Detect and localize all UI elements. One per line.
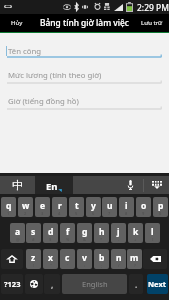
button[interactable]: n — [111, 249, 126, 269]
button[interactable]: Lưu trữ — [135, 14, 169, 32]
button[interactable]: r — [52, 197, 67, 217]
staticText: k — [133, 226, 139, 238]
staticText: & — [83, 237, 86, 242]
button[interactable]: h — [94, 223, 109, 243]
staticText: Lưu trữ — [141, 19, 163, 27]
staticText: 4 — [58, 211, 61, 216]
button[interactable]: Giờ (tiếng đồng hồ) — [0, 92, 169, 114]
staticText: 5 — [75, 211, 78, 216]
button[interactable]: En — [35, 176, 73, 194]
staticText: f — [66, 226, 70, 238]
staticText: b — [99, 252, 105, 264]
button[interactable]: g — [77, 223, 92, 243]
staticText: $ — [49, 237, 52, 242]
staticText: h — [99, 226, 105, 238]
staticText: g — [82, 226, 88, 238]
staticText: q — [6, 200, 12, 212]
staticText: % — [66, 237, 70, 242]
staticText: 8 — [125, 211, 128, 216]
staticText: 中 — [12, 178, 23, 192]
button[interactable]: x — [43, 249, 58, 269]
staticText: j — [117, 226, 120, 238]
button[interactable]: Next — [147, 274, 168, 294]
button[interactable]: , — [44, 274, 60, 294]
staticText: 9 — [142, 211, 145, 216]
staticText: , — [51, 279, 54, 290]
button[interactable]: l — [145, 223, 160, 243]
button[interactable]: c — [60, 249, 75, 269]
button[interactable]: Voice input — [118, 176, 143, 194]
staticText: o — [141, 200, 147, 212]
button[interactable]: ?123 — [1, 274, 23, 294]
staticText: w — [22, 200, 30, 212]
button[interactable]: . — [129, 274, 143, 294]
button[interactable]: b — [94, 249, 109, 269]
staticText: ?123 — [4, 279, 21, 289]
staticText: r — [58, 200, 62, 212]
button[interactable]: j — [111, 223, 126, 243]
button[interactable]: English — [62, 274, 127, 294]
button[interactable]: d — [43, 223, 58, 243]
button[interactable]: Hủy — [0, 14, 34, 32]
button[interactable]: s — [26, 223, 41, 243]
button[interactable]: Change language — [25, 274, 43, 294]
button[interactable]: y — [86, 197, 101, 217]
button[interactable]: q — [1, 197, 16, 217]
staticText: n — [116, 252, 122, 264]
button[interactable]: w — [18, 197, 33, 217]
staticText: Bảng tính giờ làm việc — [40, 17, 129, 28]
button[interactable]: Tên công — [0, 42, 169, 62]
staticText: 3 — [41, 211, 44, 216]
staticText: Mức lương (tính theo giờ) — [8, 70, 102, 81]
staticText: . — [135, 279, 138, 290]
button[interactable]: Shift — [1, 249, 23, 269]
staticText: 6 — [92, 211, 95, 216]
staticText: x — [48, 252, 53, 264]
staticText: i — [125, 200, 128, 212]
button[interactable]: v — [77, 249, 92, 269]
staticText: s — [31, 226, 36, 238]
button[interactable]: z — [26, 249, 41, 269]
staticText: English — [82, 279, 108, 289]
staticText: 2:29 PM — [137, 2, 169, 14]
button[interactable]: o — [136, 197, 151, 217]
button[interactable]: Mức lương (tính theo giờ) — [0, 66, 169, 88]
staticText: e — [40, 200, 46, 212]
staticText: y — [91, 200, 96, 212]
staticText: 2 — [24, 211, 27, 216]
staticText: * — [100, 237, 103, 242]
button[interactable]: u — [102, 197, 117, 217]
staticText: u — [107, 200, 113, 212]
staticText: 7 — [108, 211, 111, 216]
button[interactable]: a — [10, 223, 25, 243]
staticText: z — [31, 252, 36, 264]
button[interactable]: k — [128, 223, 143, 243]
staticText: t — [75, 200, 79, 212]
button[interactable]: i — [119, 197, 134, 217]
button[interactable]: 中 — [0, 176, 35, 194]
button[interactable]: p — [153, 197, 168, 217]
staticText: a — [15, 226, 21, 238]
staticText: # — [32, 237, 35, 242]
staticText: c — [65, 252, 70, 264]
staticText: m — [130, 252, 139, 264]
staticText: Next — [148, 279, 167, 289]
button[interactable]: f — [60, 223, 75, 243]
staticText: p — [158, 200, 164, 212]
button[interactable]: t — [69, 197, 84, 217]
button[interactable]: Hide keyboard — [144, 176, 169, 194]
staticText: ( — [152, 237, 154, 242]
button[interactable]: m — [127, 249, 142, 269]
button[interactable]: e — [35, 197, 50, 217]
button[interactable]: Backspace — [143, 249, 167, 269]
staticText: En — [46, 180, 58, 193]
